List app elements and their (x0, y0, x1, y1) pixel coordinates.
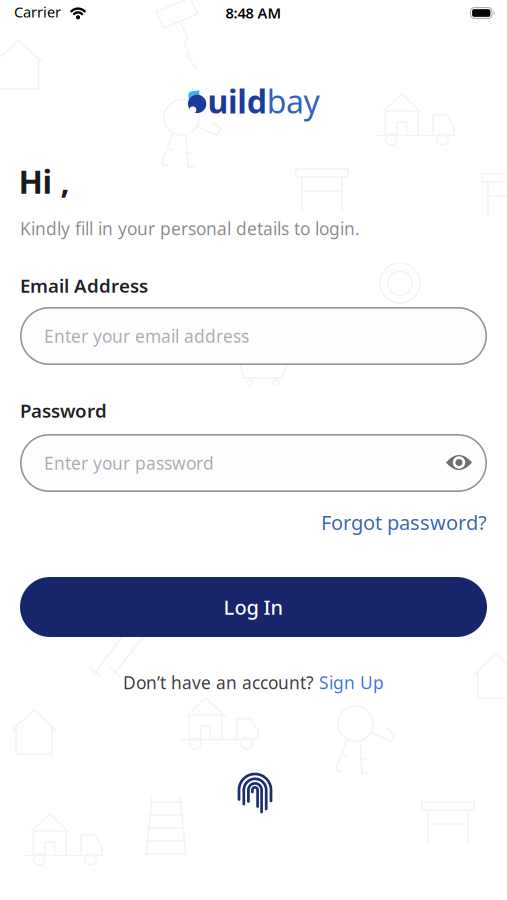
button[interactable]: Forgot password? (321, 509, 487, 536)
staticText: Don’t have an account? (123, 671, 319, 694)
staticText: 8:48 AM (225, 3, 281, 22)
staticText: Kindly fill in your personal details to … (20, 217, 360, 240)
staticText: Enter your password (44, 451, 214, 474)
staticText: Log In (223, 594, 283, 620)
staticText: Email Address (20, 273, 148, 298)
staticText: Password (20, 398, 107, 423)
button[interactable]: Log In (20, 577, 487, 637)
button[interactable]: Sign Up (319, 671, 384, 694)
staticText: Sign Up (319, 671, 384, 694)
staticText: Carrier (14, 2, 61, 21)
staticText: Forgot password? (321, 509, 487, 536)
button[interactable]: Show password (440, 448, 478, 477)
staticText: Enter your email address (44, 324, 249, 347)
staticText: Hi , (18, 160, 69, 202)
button[interactable]: Log in with fingerprint (236, 772, 274, 814)
staticText: bay (267, 80, 319, 122)
button[interactable]: Enter your password (20, 434, 487, 492)
button[interactable]: Enter your email address (20, 307, 487, 365)
staticText: uild (207, 80, 267, 122)
